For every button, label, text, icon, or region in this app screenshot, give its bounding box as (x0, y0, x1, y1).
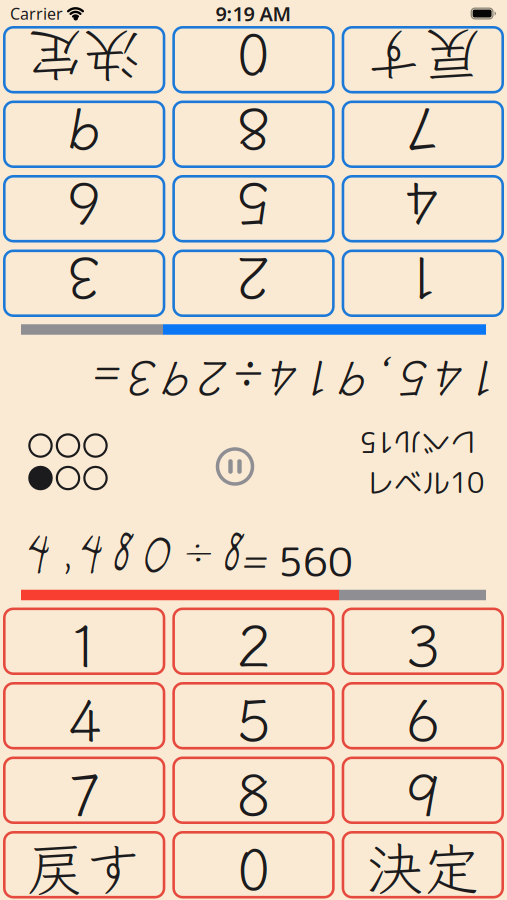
button[interactable]: 1 (3, 607, 165, 675)
staticText: = (240, 523, 266, 586)
staticText: 戻す (27, 823, 141, 900)
staticText: 2 (236, 242, 270, 325)
button[interactable]: 3 (3, 249, 165, 317)
staticText: 1 (67, 600, 101, 683)
staticText: 6 (67, 167, 101, 250)
button[interactable]: 6 (3, 175, 165, 242)
button[interactable]: 0 (172, 831, 335, 898)
staticText: 3 (406, 600, 440, 683)
staticText: 4,480÷8 (28, 499, 244, 600)
button[interactable]: 4 (342, 175, 504, 242)
button[interactable]: 6 (342, 682, 504, 749)
button[interactable]: 8 (172, 756, 335, 824)
button[interactable]: 9 (3, 100, 165, 168)
staticText: 7 (67, 749, 101, 832)
button[interactable]: 3 (342, 607, 504, 675)
button[interactable]: 決定 (342, 831, 504, 898)
button[interactable]: 9 (342, 756, 504, 824)
staticText: レベル15 (360, 423, 478, 462)
staticText: 7 (406, 93, 440, 176)
button[interactable]: 2 (172, 607, 335, 675)
staticText: 9 (67, 93, 101, 176)
button[interactable]: 1 (342, 249, 504, 317)
button[interactable]: 4 (3, 682, 165, 749)
button[interactable]: 5 (172, 682, 335, 749)
staticText: 5 (236, 167, 270, 250)
button[interactable]: 戻す (342, 26, 504, 93)
staticText: 3 (67, 242, 101, 325)
staticText: レベル10 (366, 463, 484, 502)
button[interactable]: 7 (3, 756, 165, 824)
staticText: 4 (67, 674, 101, 757)
staticText: 0 (236, 823, 270, 900)
button[interactable]: 決定 (3, 26, 165, 93)
staticText: 決定 (27, 18, 141, 101)
staticText: 8 (236, 93, 270, 176)
staticText: 戻す (366, 18, 480, 101)
staticText: 9 (406, 749, 440, 832)
staticText: 560 (278, 534, 353, 589)
staticText: 1 (406, 242, 440, 325)
staticText: 9:19 AM (215, 0, 291, 27)
button[interactable]: Pause (215, 446, 255, 486)
button[interactable]: 戻す (3, 831, 165, 898)
staticText: Carrier (10, 3, 63, 24)
staticText: 2 (236, 600, 270, 683)
staticText: 0 (236, 18, 270, 101)
staticText: 5 (236, 674, 270, 757)
button[interactable]: 5 (172, 175, 335, 242)
staticText: 6 (406, 674, 440, 757)
button[interactable]: 8 (172, 100, 335, 168)
staticText: 決定 (366, 823, 480, 900)
button[interactable]: 7 (342, 100, 504, 168)
staticText: 8 (236, 749, 270, 832)
staticText: 4 (406, 167, 440, 250)
button[interactable]: 2 (172, 249, 335, 317)
button[interactable]: 0 (172, 26, 335, 93)
staticText: 145,914÷293= (96, 348, 501, 417)
